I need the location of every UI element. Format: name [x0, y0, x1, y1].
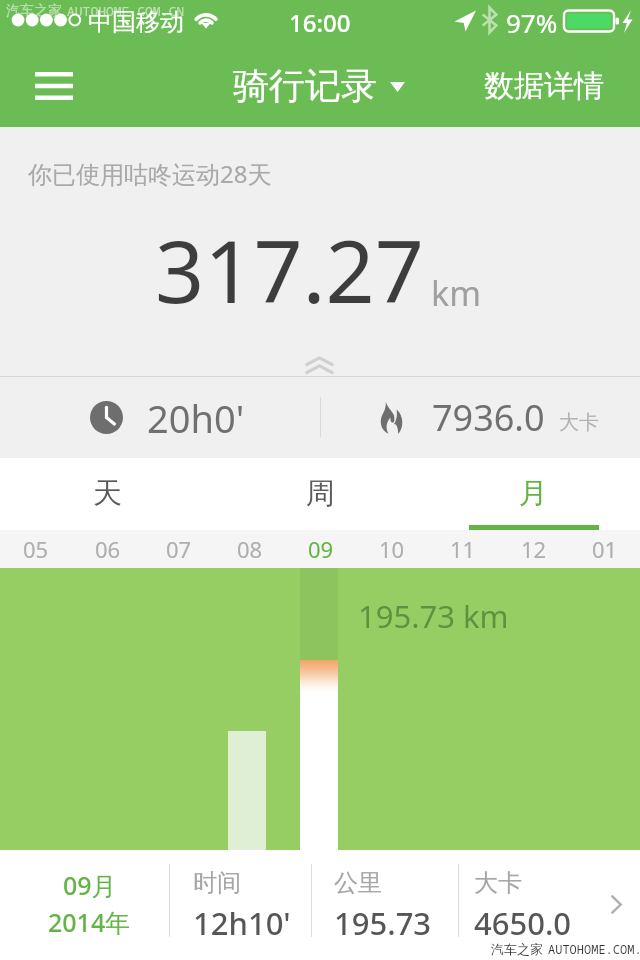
- button[interactable]: 骑行记录: [233, 55, 405, 115]
- button[interactable]: 周: [214, 458, 427, 530]
- staticText: 07: [166, 534, 192, 564]
- staticText: 你已使用咕咚运动28天: [28, 157, 272, 190]
- staticText: 汽车之家: [491, 941, 543, 957]
- button[interactable]: 数据详情: [470, 56, 618, 116]
- staticText: 09: [308, 534, 334, 564]
- staticText: 月: [519, 475, 548, 512]
- staticText: km: [431, 270, 481, 316]
- staticText: 汽车之家: [6, 2, 62, 20]
- staticText: 12h10': [193, 902, 291, 944]
- button[interactable]: 天: [0, 458, 214, 530]
- staticText: 中国移动: [88, 7, 184, 37]
- staticText: 317.27: [155, 211, 425, 328]
- button[interactable]: 20h0': [0, 377, 320, 458]
- staticText: AUTOHOME.COM.CN: [548, 941, 640, 957]
- staticText: 97%: [506, 5, 558, 40]
- button[interactable]: 7936.0: [321, 377, 640, 458]
- staticText: 大卡: [559, 410, 599, 435]
- staticText: 4650.0: [474, 902, 572, 944]
- staticText: 12: [521, 534, 547, 564]
- staticText: 7936.0: [432, 393, 545, 442]
- staticText: 195.73 km: [358, 595, 509, 637]
- staticText: 大卡: [474, 868, 522, 898]
- staticText: 08: [237, 534, 263, 564]
- staticText: 09月: [63, 868, 117, 902]
- staticText: 2014年: [48, 905, 131, 939]
- staticText: 天: [93, 475, 122, 512]
- staticText: 06: [95, 534, 121, 564]
- staticText: 195.73: [334, 902, 432, 944]
- staticText: 01: [592, 534, 618, 564]
- staticText: 数据详情: [484, 67, 604, 105]
- button[interactable]: 09月: [0, 850, 640, 960]
- staticText: 时间: [193, 868, 241, 898]
- staticText: 16:00: [289, 6, 351, 39]
- staticText: 骑行记录: [233, 63, 377, 108]
- button[interactable]: Menu: [18, 56, 90, 116]
- staticText: AUTOHOME.COM.CN: [67, 2, 185, 20]
- staticText: 11: [450, 534, 476, 564]
- staticText: 10: [379, 534, 405, 564]
- staticText: 公里: [334, 868, 382, 898]
- staticText: 周: [306, 475, 335, 512]
- button[interactable]: 月: [427, 458, 640, 530]
- staticText: 05: [23, 534, 49, 564]
- staticText: 20h0': [147, 392, 245, 444]
